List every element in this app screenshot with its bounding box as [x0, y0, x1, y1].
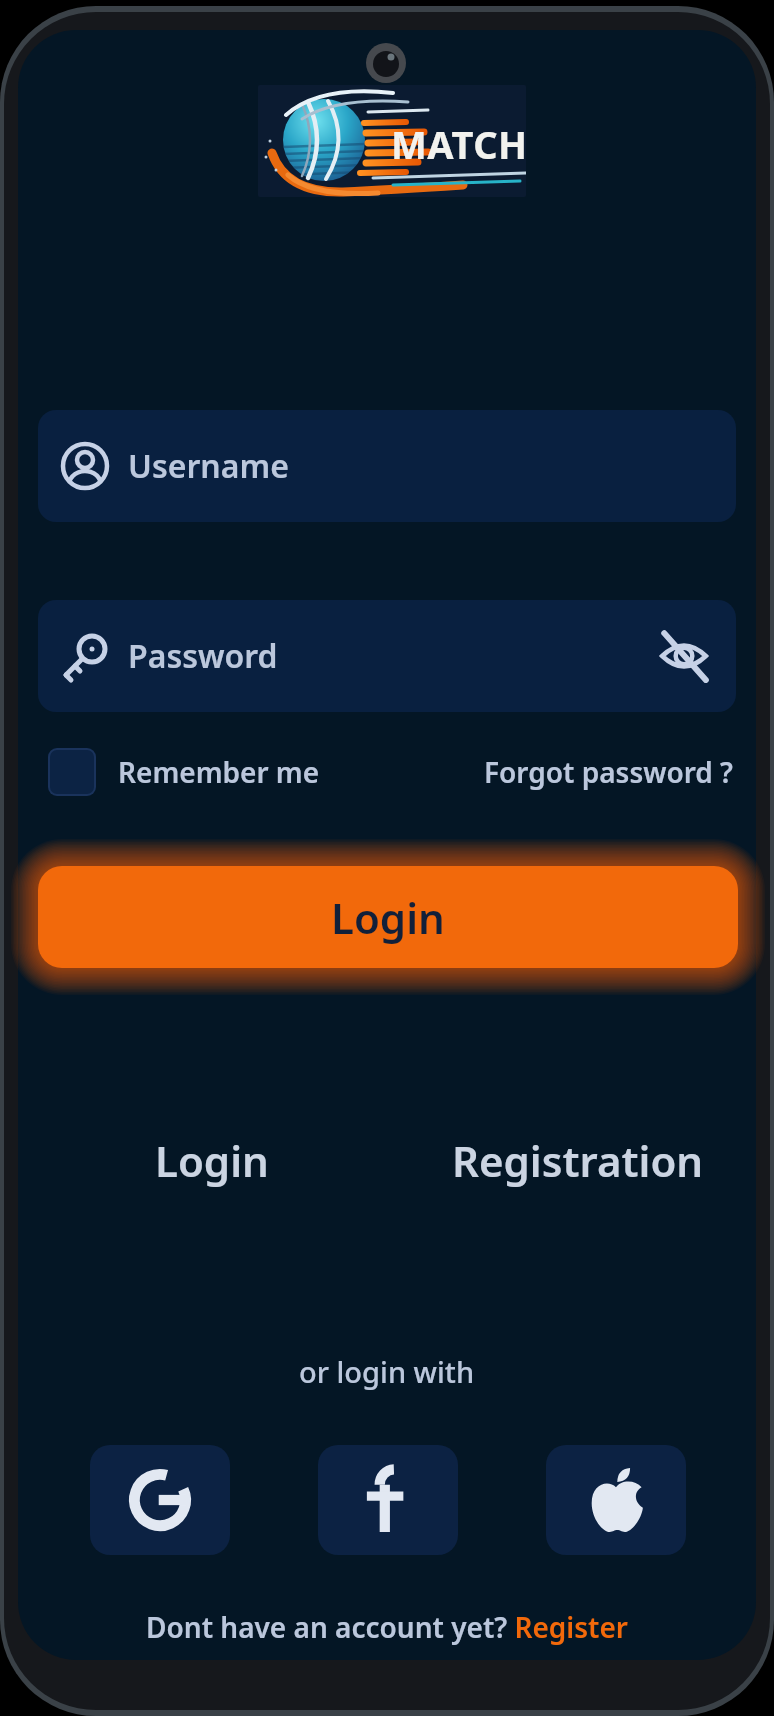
button[interactable]: Dont have an account yet? Register: [0, 1608, 774, 1646]
button[interactable]: Password: [38, 600, 736, 712]
button[interactable]: [90, 1445, 230, 1555]
staticText: Dont have an account yet? Register: [146, 1608, 628, 1646]
staticText: or login with: [299, 1352, 475, 1391]
button[interactable]: [318, 1445, 458, 1555]
staticText: Remember me: [118, 753, 320, 791]
staticText: Login: [155, 1132, 269, 1189]
button[interactable]: Registration: [420, 1128, 735, 1192]
staticText: Password: [128, 634, 278, 678]
button[interactable]: Forgot password ?: [484, 753, 734, 791]
button[interactable]: [48, 748, 96, 796]
staticText: Registration: [452, 1132, 704, 1189]
staticText: MATCH: [391, 118, 526, 170]
staticText: Login: [331, 889, 445, 946]
button[interactable]: [546, 1445, 686, 1555]
staticText: Username: [128, 444, 289, 488]
button[interactable]: Login: [38, 1128, 385, 1192]
button[interactable]: Login: [38, 866, 738, 968]
button[interactable]: Username: [38, 410, 736, 522]
